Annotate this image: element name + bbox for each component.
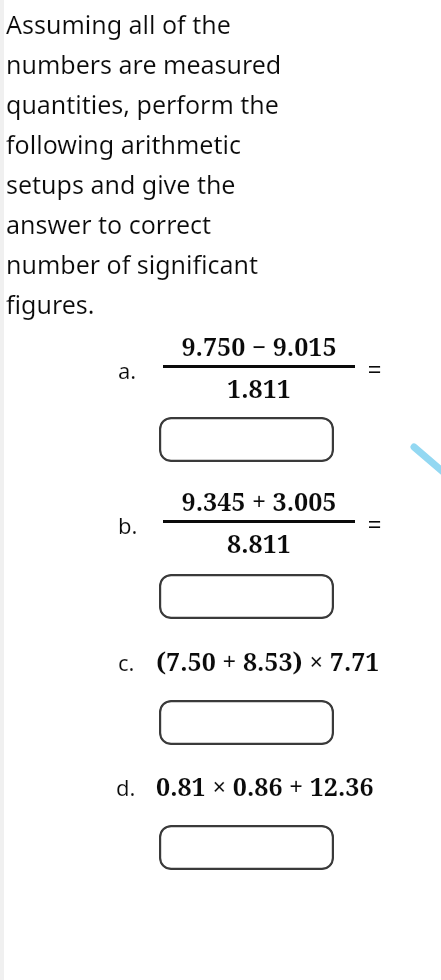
button[interactable]: Answer a [159,417,334,462]
staticText: numbers are measured [6,47,282,81]
button[interactable]: Answer b [159,574,334,619]
staticText: figures. [6,287,95,321]
staticText: 8.811 [163,526,355,560]
staticText: = [367,507,382,541]
staticText: (7.50 + 8.53) × 7.71 [156,644,380,678]
staticText: a. [118,355,137,385]
staticText: c. [118,647,135,677]
staticText: 9.345 + 3.005 [163,484,355,518]
button[interactable]: Answer d [159,825,334,870]
staticText: b. [118,510,138,540]
staticText: number of significant [6,247,259,281]
staticText: 1.811 [163,371,355,405]
staticText: following arithmetic [6,127,241,161]
staticText: Assuming all of the [6,7,231,41]
staticText: 0.81 × 0.86 + 12.36 [156,769,374,803]
staticText: = [367,352,382,386]
button[interactable]: Answer c [159,700,334,745]
staticText: d. [116,772,136,802]
staticText: quantities, perform the [6,87,279,121]
staticText: setups and give the [6,167,236,201]
staticText: 9.750 − 9.015 [163,329,355,363]
staticText: answer to correct [6,207,212,241]
